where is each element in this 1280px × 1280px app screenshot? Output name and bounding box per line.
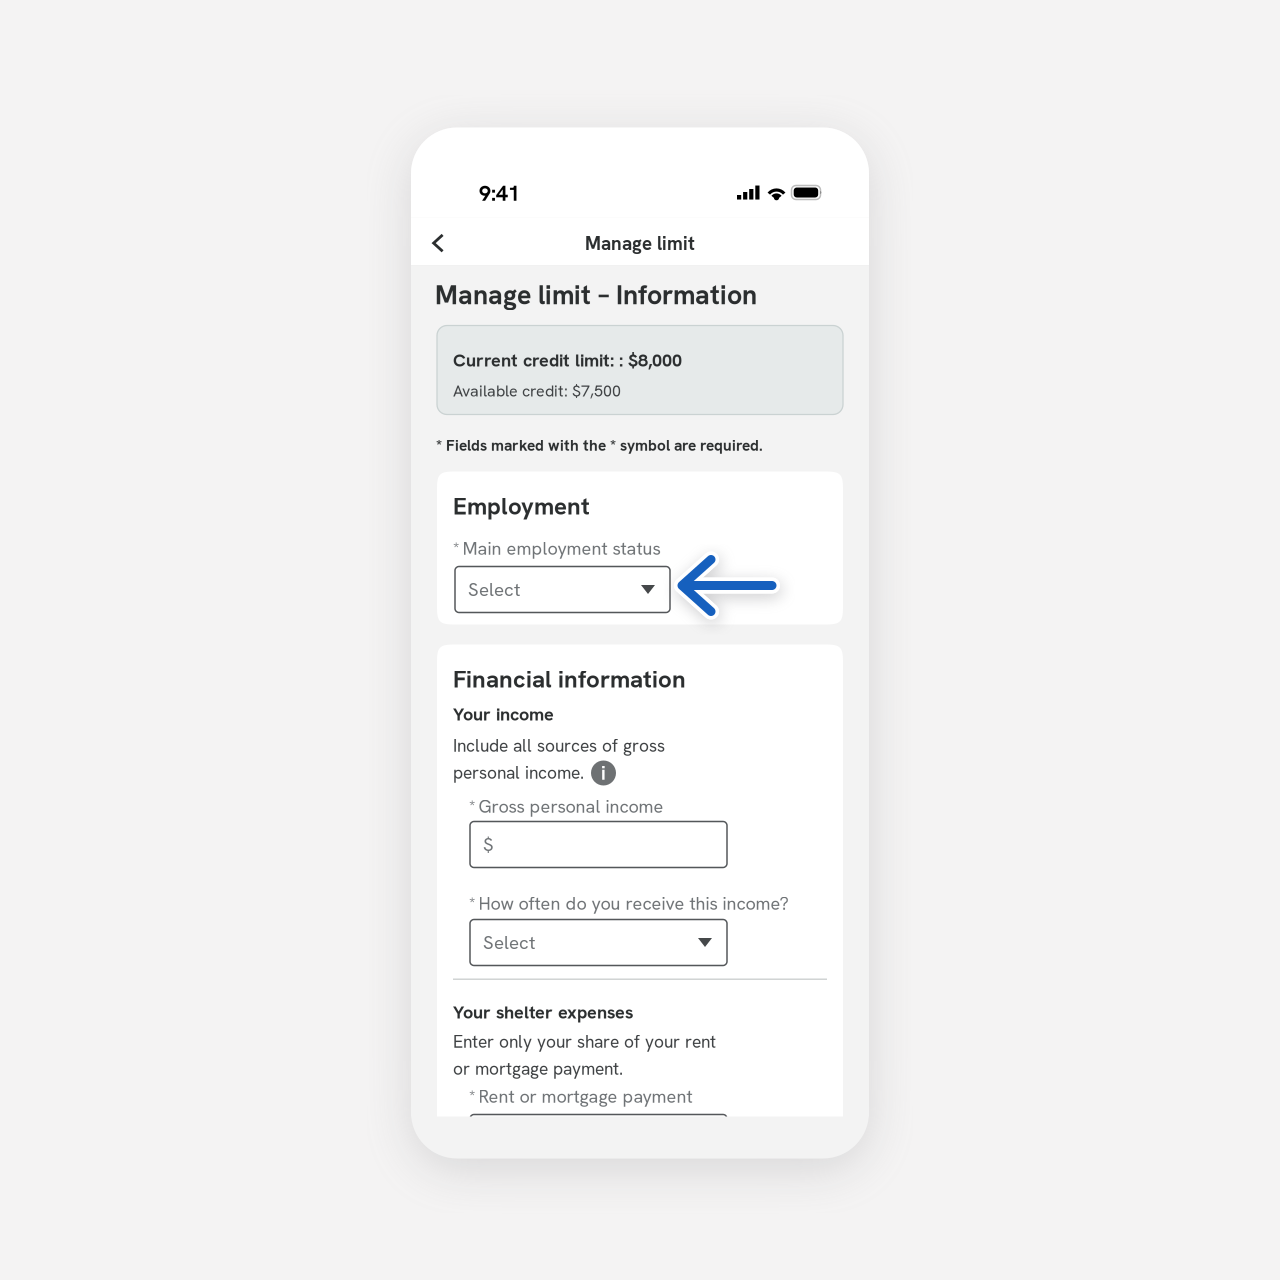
staticText: $	[483, 832, 493, 857]
button[interactable]: More information	[591, 760, 616, 785]
staticText: Financial information	[453, 663, 686, 695]
button[interactable]: Back	[419, 219, 457, 266]
staticText: personal income.	[453, 761, 584, 784]
staticText: Manage limit	[585, 231, 695, 256]
staticText: Include all sources of gross	[453, 734, 665, 757]
staticText: Main employment status	[462, 537, 660, 560]
staticText: Current credit limit: : $8,000	[453, 348, 682, 372]
staticText: Your shelter expenses	[453, 1000, 633, 1024]
staticText: Rent or mortgage payment	[478, 1085, 692, 1108]
staticText: Manage limit – Information	[435, 277, 757, 312]
staticText: *	[469, 1085, 475, 1106]
staticText: Gross personal income	[478, 795, 663, 818]
staticText: i	[601, 760, 606, 786]
staticText: How often do you receive this income?	[478, 892, 788, 915]
staticText: Select	[468, 577, 520, 602]
staticText: Select	[483, 930, 535, 955]
button[interactable]: $	[470, 821, 727, 867]
staticText: *	[453, 537, 459, 558]
staticText: * Fields marked with the * symbol are re…	[436, 435, 763, 455]
staticText: Employment	[453, 490, 590, 522]
staticText: 9:41	[479, 179, 520, 207]
staticText: Enter only your share of your rent	[453, 1030, 716, 1053]
staticText: or mortgage payment.	[453, 1057, 623, 1080]
staticText: Available credit: $7,500	[453, 380, 621, 401]
staticText: Your income	[453, 702, 554, 726]
staticText: *	[469, 892, 475, 913]
button[interactable]: Select	[455, 566, 670, 612]
staticText: *	[469, 795, 475, 816]
button[interactable]: $	[470, 1114, 727, 1160]
button[interactable]: Select	[470, 919, 727, 965]
